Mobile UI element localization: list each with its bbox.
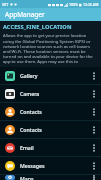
button[interactable]: More options for Email <box>89 139 99 156</box>
staticText: ACCESS_FINE_LOCATION <box>3 23 72 31</box>
button[interactable]: More options for Messages <box>89 157 99 174</box>
button[interactable]: More options for Camera <box>89 85 99 102</box>
button[interactable]: AppManager <box>0 8 101 21</box>
button[interactable]: Contacts <box>0 121 101 138</box>
button[interactable]: Email <box>0 139 101 156</box>
button[interactable]: Contacts <box>0 103 101 120</box>
button[interactable]: Messages <box>0 157 101 174</box>
button[interactable]: Gallery <box>0 67 101 84</box>
staticText: Allows the app to get your precise locat… <box>3 33 98 65</box>
staticText: Messages <box>20 162 89 169</box>
staticText: Contacts <box>20 108 89 115</box>
button[interactable]: Camera <box>0 85 101 102</box>
staticText: AppManager <box>5 10 45 19</box>
button[interactable]: More options for Maps <box>89 175 99 180</box>
staticText: Email <box>20 144 89 151</box>
staticText: Maps <box>20 175 89 180</box>
staticText: Camera <box>20 90 89 97</box>
staticText: SKT <box>2 2 9 7</box>
button[interactable]: Maps <box>0 175 101 180</box>
staticText: Gallery <box>20 72 89 79</box>
button[interactable]: More options for Contacts <box>89 121 99 138</box>
staticText: 12:26 AM <box>83 2 99 7</box>
button[interactable]: More options for Gallery <box>89 67 99 84</box>
button[interactable]: More options for Contacts <box>89 103 99 120</box>
staticText: Contacts <box>20 126 89 133</box>
staticText: 100% <box>69 2 78 7</box>
